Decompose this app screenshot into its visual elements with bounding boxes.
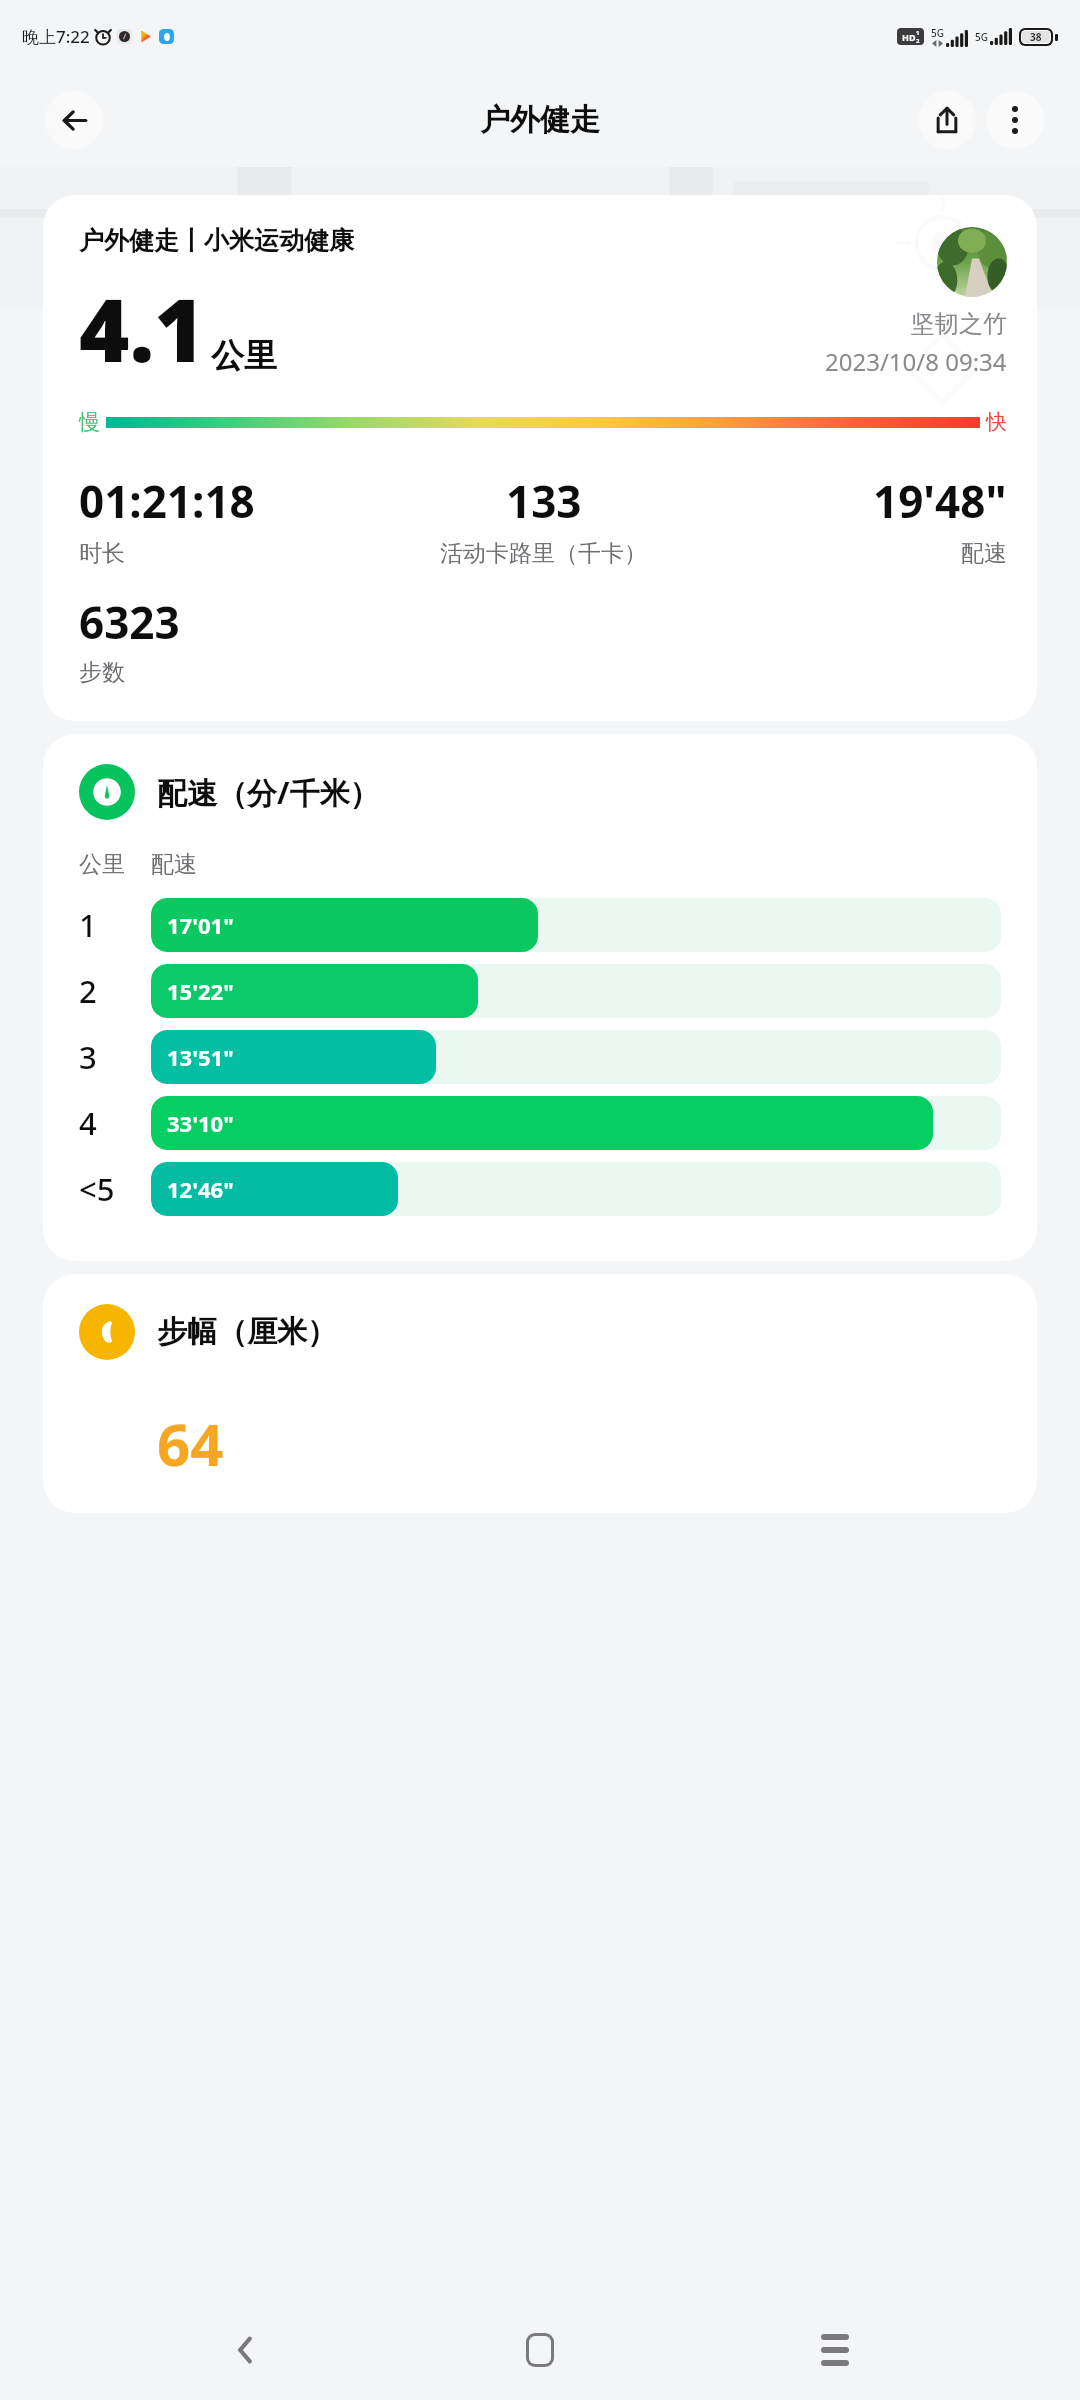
staticText: 33'10" — [167, 1108, 234, 1138]
staticText: 1 — [79, 904, 97, 946]
staticText: 4.1 — [79, 270, 205, 387]
button[interactable]: 4 — [79, 1093, 1001, 1153]
staticText: 户外健走丨小米运动健康 — [79, 225, 354, 256]
staticText: 晚上7:22 — [22, 25, 90, 48]
staticText: 2 — [916, 37, 920, 45]
button[interactable]: Share — [918, 91, 976, 149]
button[interactable]: 2 — [79, 961, 1001, 1021]
staticText: 时长 — [79, 539, 389, 568]
staticText: 公里 — [79, 850, 125, 879]
staticText: 13'51" — [167, 1042, 234, 1072]
staticText: 15'22" — [167, 976, 234, 1006]
staticText: 5G — [975, 30, 988, 44]
button[interactable]: Back — [45, 91, 103, 149]
button[interactable]: 3 — [79, 1027, 1001, 1087]
button[interactable]: Recent apps — [785, 2300, 885, 2400]
staticText: 1 — [916, 29, 920, 37]
staticText: 5G — [931, 26, 944, 40]
staticText: 3 — [79, 1036, 97, 1078]
staticText: 4 — [79, 1102, 97, 1144]
staticText: 配速 — [151, 850, 197, 879]
staticText: 配速 — [698, 539, 1007, 568]
staticText: 38 — [1030, 30, 1042, 44]
staticText: 2 — [79, 970, 97, 1012]
button[interactable]: 步幅（厘米） — [43, 1274, 1037, 1513]
staticText: <5 — [79, 1168, 115, 1210]
staticText: 133 — [506, 471, 582, 531]
staticText: 配速（分/千米） — [157, 772, 380, 813]
staticText: 19'48" — [873, 471, 1007, 531]
staticText: 公里 — [211, 335, 277, 377]
staticText: 户外健走 — [480, 101, 600, 139]
staticText: 慢 — [79, 409, 100, 435]
staticText: 17'01" — [167, 910, 234, 940]
button[interactable]: <5 — [79, 1159, 1001, 1219]
staticText: 快 — [986, 409, 1007, 435]
staticText: 坚韧之竹 — [911, 309, 1007, 339]
staticText: 步幅（厘米） — [157, 1313, 337, 1351]
button[interactable]: 配速（分/千米） — [43, 734, 1037, 1261]
staticText: 6323 — [79, 592, 180, 652]
button[interactable]: 户外健走丨小米运动健康 — [43, 195, 1037, 721]
staticText: 2023/10/8 09:34 — [825, 345, 1007, 378]
staticText: 12'46" — [167, 1174, 234, 1204]
staticText: HD — [902, 31, 916, 43]
staticText: 步数 — [79, 658, 125, 687]
staticText: 64 — [157, 1404, 224, 1483]
button[interactable]: More options — [986, 91, 1044, 149]
staticText: 活动卡路里（千卡） — [389, 539, 698, 568]
button[interactable]: 1 — [79, 895, 1001, 955]
button[interactable]: Back — [195, 2300, 295, 2400]
button[interactable]: Home — [490, 2300, 590, 2400]
staticText: 01:21:18 — [79, 471, 255, 531]
